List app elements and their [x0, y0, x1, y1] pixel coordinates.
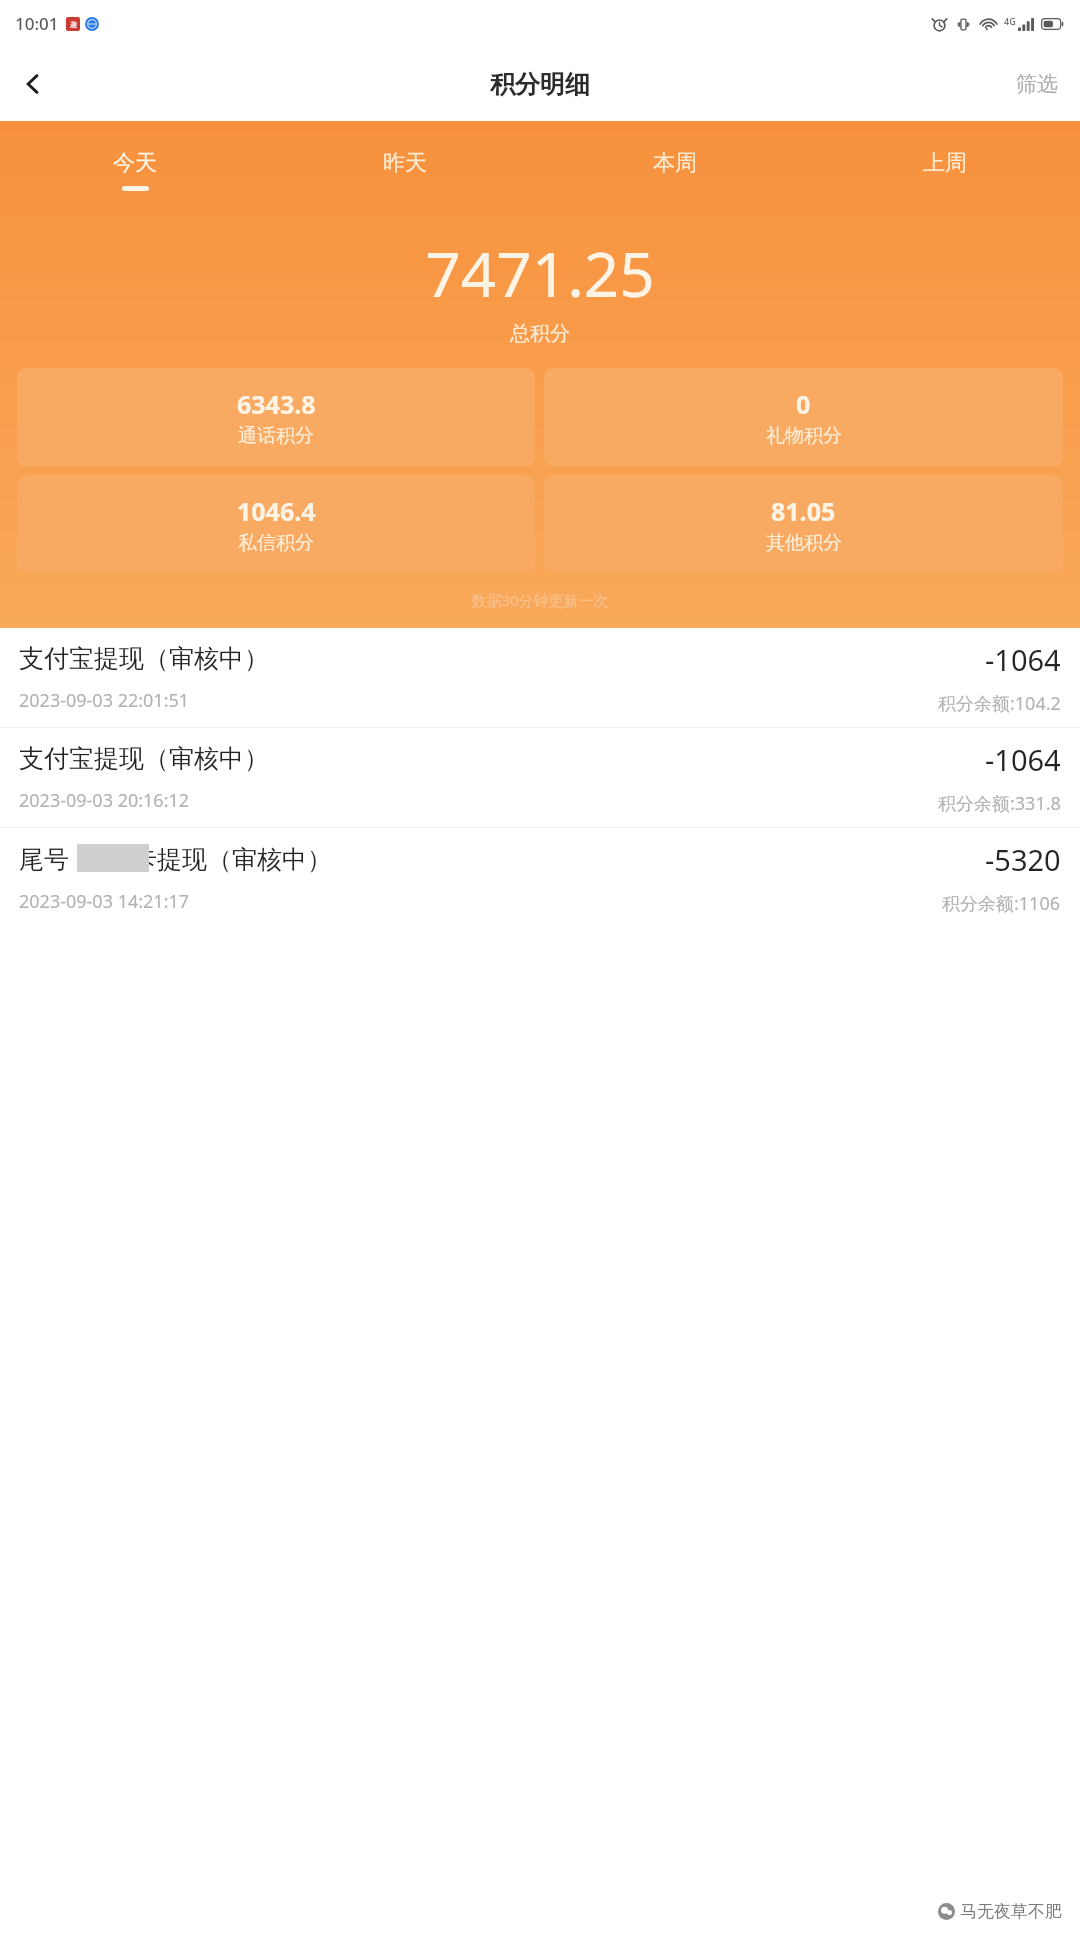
staticText: 总积分: [0, 321, 1080, 346]
staticText: 1046.4: [237, 494, 316, 528]
staticText: 81.05: [771, 494, 836, 528]
staticText: 积分余额:104.2: [938, 691, 1061, 716]
staticText: 6343.8: [237, 387, 316, 421]
staticText: 礼物积分: [766, 424, 842, 448]
staticText: 其他积分: [766, 531, 842, 555]
staticText: 通话积分: [238, 424, 314, 448]
button[interactable]: 支付宝提现（审核中）: [0, 628, 1080, 727]
staticText: -5320: [985, 840, 1061, 879]
staticText: -1064: [985, 640, 1061, 679]
staticText: 筛选: [1016, 71, 1058, 97]
button[interactable]: 昨天: [270, 143, 540, 197]
button[interactable]: 6343.8: [17, 368, 535, 466]
staticText: 2023-09-03 20:16:12: [19, 788, 190, 813]
staticText: 支付宝提现（审核中）: [19, 743, 269, 774]
staticText: 积分明细: [490, 69, 590, 100]
staticText: 私信积分: [238, 531, 314, 555]
button[interactable]: 今天: [0, 143, 270, 197]
staticText: 昨天: [383, 149, 427, 177]
staticText: -1064: [985, 740, 1061, 779]
button[interactable]: 支付宝提现（审核中）: [0, 728, 1080, 827]
button[interactable]: 筛选: [994, 57, 1080, 111]
staticText: 马无夜草不肥: [960, 1901, 1062, 1922]
staticText: 2023-09-03 22:01:51: [19, 688, 190, 713]
staticText: 今天: [113, 149, 157, 177]
button[interactable]: 0: [544, 368, 1063, 466]
button[interactable]: 尾号 银行卡提现（审核中）: [0, 828, 1080, 927]
staticText: 本周: [653, 149, 697, 177]
button[interactable]: 81.05: [544, 475, 1063, 573]
staticText: 4G: [1004, 15, 1016, 27]
staticText: 积分余额:331.8: [938, 791, 1061, 816]
staticText: 7471.25: [0, 231, 1080, 315]
button[interactable]: 上周: [810, 143, 1080, 197]
staticText: 尾号 银行卡提现（审核中）: [19, 841, 333, 875]
staticText: 上周: [923, 149, 967, 177]
staticText: 支付宝提现（审核中）: [19, 643, 269, 674]
button[interactable]: Back: [0, 51, 66, 117]
staticText: 积分余额:1106: [942, 891, 1061, 916]
staticText: 10:01: [15, 12, 59, 35]
staticText: 0: [796, 387, 811, 421]
staticText: 数据30分钟更新一次: [0, 590, 1080, 610]
staticText: 2023-09-03 14:21:17: [19, 889, 190, 914]
button[interactable]: 1046.4: [17, 475, 535, 573]
staticText: 趣: [70, 20, 77, 29]
button[interactable]: 本周: [540, 143, 810, 197]
